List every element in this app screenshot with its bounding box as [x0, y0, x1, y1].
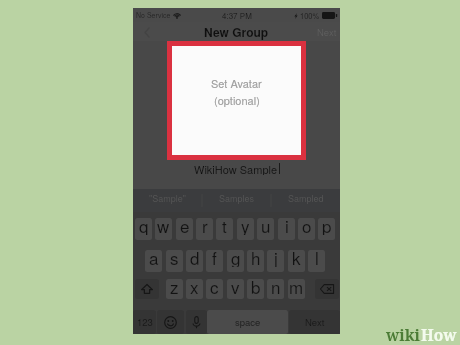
staticText: Next: [305, 315, 325, 329]
staticText: a: [149, 250, 159, 267]
staticText: "Sample": [149, 192, 186, 205]
staticText: Set Avatar: [211, 75, 262, 91]
staticText: w: [157, 218, 170, 235]
button[interactable]: u: [257, 218, 274, 240]
staticText: z: [170, 279, 179, 294]
staticText: v: [231, 279, 240, 294]
button[interactable]: Set Avatar: [172, 46, 301, 155]
staticText: No Service: [136, 10, 171, 20]
button[interactable]: p: [318, 218, 335, 240]
button[interactable]: b: [247, 279, 264, 299]
button[interactable]: Samples: [202, 189, 271, 212]
staticText: u: [261, 218, 271, 235]
staticText: Samples: [219, 192, 255, 205]
staticText: t: [222, 218, 227, 235]
staticText: f: [212, 250, 217, 267]
button[interactable]: o: [298, 218, 315, 240]
button[interactable]: c: [206, 279, 223, 299]
staticText: j: [274, 250, 278, 267]
button[interactable]: q: [135, 218, 152, 240]
staticText: space: [235, 315, 261, 329]
staticText: x: [190, 279, 199, 294]
staticText: g: [231, 250, 241, 267]
button[interactable]: w: [155, 218, 172, 240]
button[interactable]: z: [166, 279, 183, 299]
button[interactable]: m: [288, 279, 305, 299]
button[interactable]: "Sample": [133, 189, 202, 212]
staticText: 123: [137, 315, 153, 329]
button[interactable]: i: [278, 218, 295, 240]
button[interactable]: Next: [317, 25, 337, 39]
button[interactable]: Dictation: [186, 310, 207, 334]
staticText: New Group: [204, 23, 269, 40]
button[interactable]: h: [247, 250, 264, 272]
staticText: 100%: [300, 10, 320, 21]
staticText: h: [251, 250, 261, 267]
button[interactable]: Delete: [315, 279, 339, 299]
button[interactable]: Emoji: [157, 310, 184, 334]
staticText: (optional): [214, 92, 260, 108]
button[interactable]: j: [267, 250, 284, 272]
button[interactable]: l: [308, 250, 325, 272]
button[interactable]: Next: [289, 310, 340, 334]
button[interactable]: e: [176, 218, 193, 240]
staticText: How: [421, 324, 457, 345]
button[interactable]: a: [145, 250, 162, 272]
staticText: o: [302, 218, 312, 235]
staticText: WikiHow Sample: [194, 161, 278, 175]
staticText: q: [139, 218, 149, 235]
button[interactable]: n: [267, 279, 284, 299]
staticText: Sampled: [288, 192, 324, 205]
button[interactable]: space: [207, 310, 288, 334]
staticText: m: [289, 279, 304, 294]
staticText: c: [210, 279, 219, 294]
button[interactable]: Sampled: [271, 189, 340, 212]
button[interactable]: s: [166, 250, 183, 272]
staticText: s: [170, 250, 179, 267]
staticText: wiki: [386, 324, 421, 345]
staticText: i: [285, 218, 289, 235]
staticText: r: [202, 218, 208, 235]
button[interactable]: d: [186, 250, 203, 272]
button[interactable]: t: [216, 218, 233, 240]
staticText: n: [271, 279, 281, 294]
staticText: k: [292, 250, 301, 267]
staticText: y: [241, 218, 250, 235]
button[interactable]: y: [237, 218, 254, 240]
staticText: 4:37 PM: [222, 10, 252, 21]
staticText: l: [315, 250, 319, 267]
staticText: b: [251, 279, 261, 294]
staticText: d: [190, 250, 200, 267]
staticText: e: [180, 218, 190, 235]
button[interactable]: x: [186, 279, 203, 299]
button[interactable]: f: [206, 250, 223, 272]
staticText: p: [322, 218, 332, 235]
staticText: Next: [317, 25, 337, 39]
button[interactable]: k: [288, 250, 305, 272]
button[interactable]: v: [227, 279, 244, 299]
button[interactable]: 123: [133, 310, 156, 334]
button[interactable]: r: [196, 218, 213, 240]
button[interactable]: WikiHow Sample: [133, 161, 340, 175]
button[interactable]: Shift: [135, 279, 159, 299]
button[interactable]: g: [227, 250, 244, 272]
